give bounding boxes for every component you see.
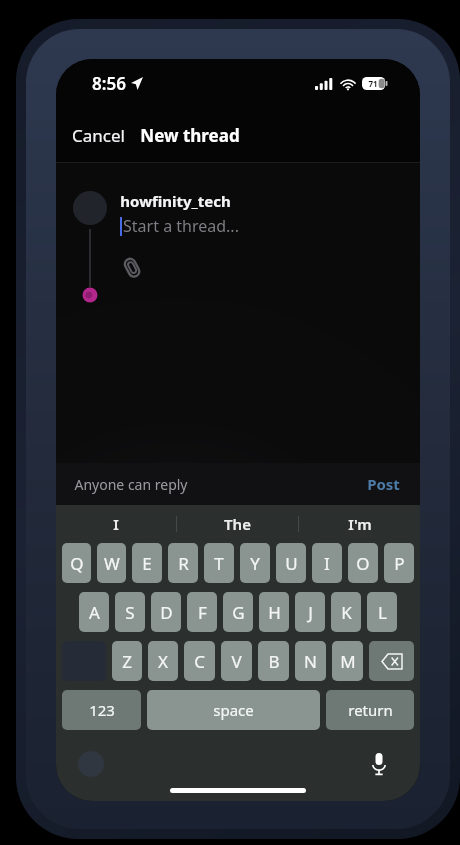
- staticText: D: [160, 601, 173, 624]
- staticText: The: [224, 514, 251, 534]
- staticText: T: [214, 552, 224, 575]
- button[interactable]: L: [367, 592, 397, 632]
- button[interactable]: O: [348, 543, 378, 583]
- button[interactable]: D: [151, 592, 181, 632]
- staticText: Start a thread...: [123, 215, 239, 237]
- button[interactable]: Backspace: [369, 641, 414, 681]
- staticText: P: [394, 552, 405, 575]
- staticText: V: [231, 650, 242, 673]
- button[interactable]: The: [177, 514, 298, 534]
- button[interactable]: Emoji keyboard: [78, 751, 104, 777]
- staticText: Anyone can reply: [74, 475, 188, 494]
- button[interactable]: V: [221, 641, 252, 681]
- staticText: J: [308, 601, 313, 624]
- button[interactable]: P: [384, 543, 414, 583]
- button[interactable]: Y: [240, 543, 270, 583]
- button[interactable]: H: [259, 592, 289, 632]
- button[interactable]: K: [331, 592, 361, 632]
- button[interactable]: X: [148, 641, 178, 681]
- staticText: Y: [250, 552, 260, 575]
- button[interactable]: B: [258, 641, 289, 681]
- button[interactable]: space: [147, 690, 320, 730]
- button[interactable]: W: [97, 543, 126, 583]
- staticText: F: [198, 601, 207, 624]
- staticText: Post: [367, 474, 400, 494]
- staticText: 71: [368, 78, 378, 89]
- button[interactable]: Anyone can reply: [56, 469, 200, 500]
- button[interactable]: Post: [353, 468, 420, 500]
- button[interactable]: return: [326, 690, 414, 730]
- staticText: H: [268, 601, 281, 624]
- button[interactable]: Attach media: [120, 253, 145, 282]
- button[interactable]: A: [79, 592, 109, 632]
- staticText: return: [348, 700, 393, 720]
- staticText: X: [158, 650, 168, 673]
- staticText: L: [378, 601, 387, 624]
- staticText: K: [341, 601, 352, 624]
- staticText: N: [304, 650, 317, 673]
- staticText: 8:56: [92, 72, 126, 95]
- staticText: 123: [89, 700, 115, 720]
- staticText: B: [268, 650, 280, 673]
- staticText: W: [104, 552, 120, 575]
- staticText: I: [324, 552, 330, 575]
- button[interactable]: C: [184, 641, 215, 681]
- staticText: S: [125, 601, 135, 624]
- button[interactable]: R: [168, 543, 198, 583]
- button[interactable]: Dictation: [364, 749, 394, 779]
- staticText: Z: [122, 650, 132, 673]
- staticText: U: [285, 552, 298, 575]
- staticText: M: [340, 650, 356, 673]
- staticText: I'm: [348, 514, 372, 534]
- staticText: E: [142, 552, 152, 575]
- staticText: New thread: [140, 124, 240, 147]
- staticText: O: [356, 552, 370, 575]
- staticText: Cancel: [72, 124, 125, 147]
- button[interactable]: U: [276, 543, 306, 583]
- staticText: G: [232, 601, 245, 624]
- button[interactable]: J: [295, 592, 325, 632]
- staticText: Q: [70, 552, 84, 575]
- button[interactable]: E: [132, 543, 162, 583]
- staticText: space: [213, 700, 254, 720]
- staticText: I: [113, 514, 119, 534]
- button[interactable]: N: [295, 641, 326, 681]
- button[interactable]: I'm: [299, 514, 420, 534]
- staticText: A: [89, 601, 100, 624]
- staticText: R: [178, 552, 189, 575]
- button[interactable]: F: [187, 592, 217, 632]
- button[interactable]: Q: [62, 543, 91, 583]
- button[interactable]: S: [115, 592, 145, 632]
- button[interactable]: Cancel: [56, 116, 139, 155]
- button[interactable]: M: [332, 641, 363, 681]
- staticText: C: [194, 650, 205, 673]
- button[interactable]: T: [204, 543, 234, 583]
- button[interactable]: 123: [62, 690, 141, 730]
- staticText: howfinity_tech: [120, 191, 231, 211]
- button[interactable]: I: [56, 514, 176, 534]
- button[interactable]: Z: [112, 641, 142, 681]
- button[interactable]: G: [223, 592, 253, 632]
- button[interactable]: I: [312, 543, 342, 583]
